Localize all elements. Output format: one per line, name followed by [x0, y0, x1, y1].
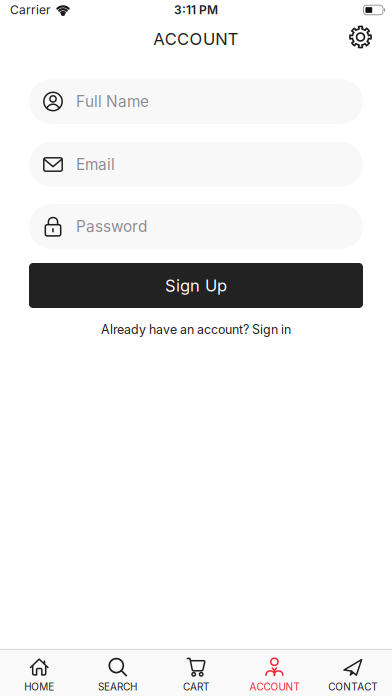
button[interactable]: CONTACT — [314, 657, 392, 693]
staticText: CART — [183, 681, 209, 693]
staticText: HOME — [24, 681, 54, 693]
button[interactable]: Email — [29, 142, 363, 187]
staticText: Sign Up — [165, 275, 227, 295]
button[interactable]: Full Name — [29, 79, 363, 124]
button[interactable]: Already have an account? Sign in — [101, 322, 291, 337]
button[interactable]: Password — [29, 204, 363, 249]
staticText: SEARCH — [98, 681, 137, 693]
button[interactable]: CART — [157, 657, 235, 693]
staticText: Full Name — [76, 92, 149, 111]
button[interactable]: HOME — [0, 657, 78, 693]
staticText: Email — [76, 155, 115, 174]
button[interactable]: ACCOUNT — [235, 657, 314, 693]
button[interactable]: SEARCH — [78, 657, 157, 693]
button[interactable]: Settings — [349, 25, 372, 48]
staticText: Carrier — [10, 3, 51, 17]
staticText: Already have an account? Sign in — [101, 322, 291, 337]
staticText: ACCOUNT — [153, 29, 239, 49]
button[interactable]: Sign Up — [29, 263, 363, 308]
staticText: 3:11 PM — [174, 3, 218, 17]
staticText: Password — [76, 217, 147, 236]
staticText: CONTACT — [328, 681, 377, 693]
staticText: ACCOUNT — [249, 681, 299, 693]
